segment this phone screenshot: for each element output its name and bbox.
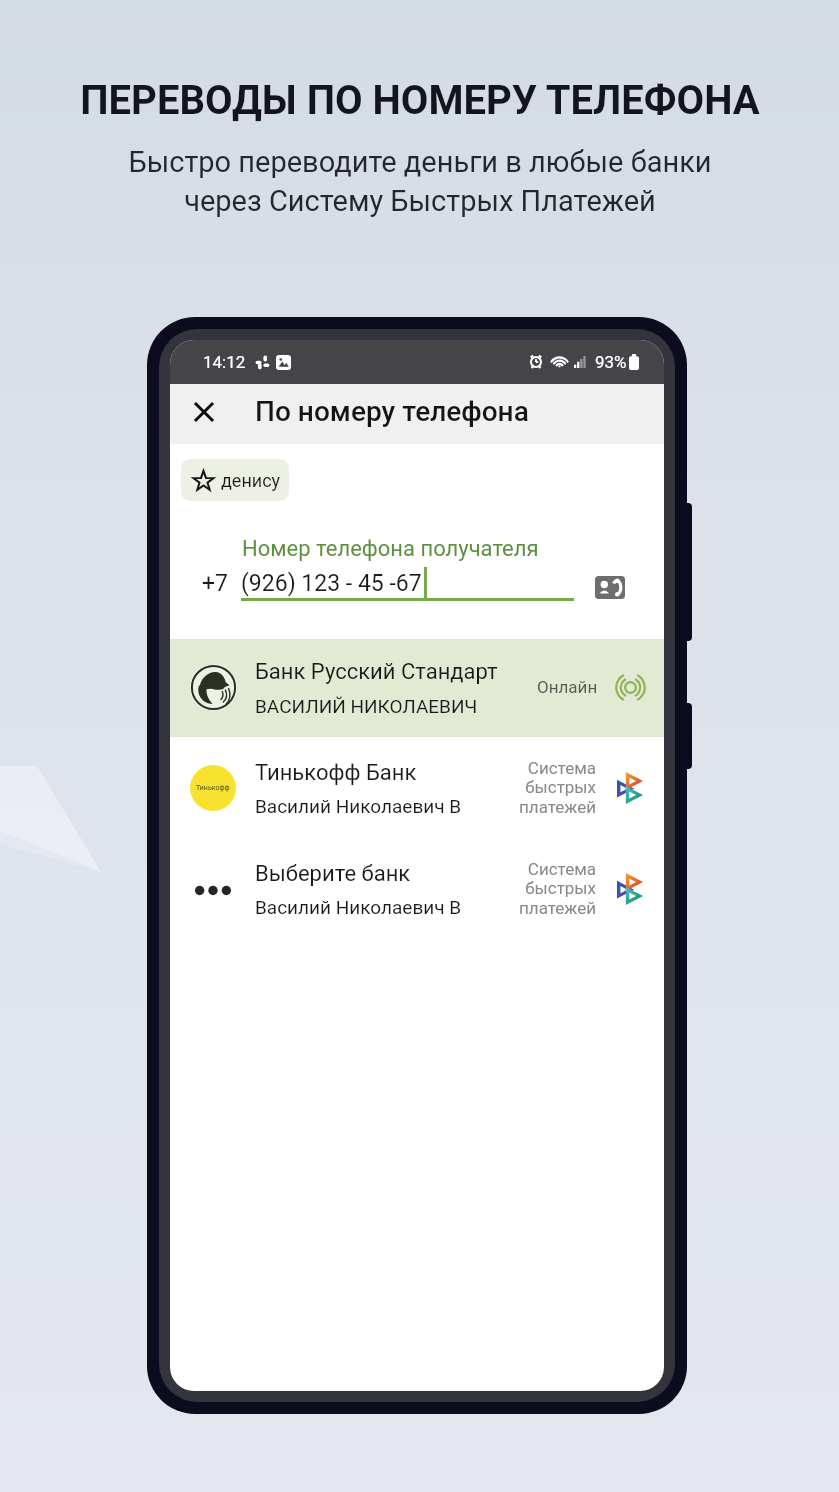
- staticText: (926) 123 - 45 -67: [241, 570, 422, 597]
- staticText: По номеру телефона: [255, 395, 529, 428]
- staticText: 93%: [595, 352, 627, 372]
- staticText: ВАСИЛИЙ НИКОЛАЕВИЧ: [255, 695, 478, 717]
- staticText: 14:12: [203, 352, 246, 372]
- staticText: Быстро переводите деньги в любые банки ч…: [128, 145, 712, 218]
- button[interactable]: Банк Русский Стандарт: [170, 639, 664, 737]
- staticText: Василий Николаевич В: [255, 795, 462, 817]
- staticText: Тинькофф Банк: [255, 760, 417, 786]
- staticText: Номер телефона получателя: [242, 536, 539, 562]
- staticText: ПЕРЕВОДЫ ПО НОМЕРУ ТЕЛЕФОНА: [80, 77, 760, 124]
- staticText: Тинькофф: [196, 784, 230, 792]
- staticText: Банк Русский Стандарт: [255, 659, 498, 685]
- staticText: Василий Николаевич В: [255, 896, 462, 918]
- button[interactable]: Выберите банк: [170, 838, 664, 939]
- button[interactable]: Выбрать из контактов: [590, 567, 630, 607]
- staticText: Выберите банк: [255, 861, 411, 887]
- button[interactable]: денису: [181, 459, 289, 501]
- staticText: Система быстрых платежей: [470, 758, 596, 818]
- button[interactable]: Закрыть: [182, 390, 226, 434]
- staticText: Система быстрых платежей: [470, 859, 596, 919]
- staticText: Онлайн: [537, 677, 598, 697]
- button[interactable]: Тинькофф: [170, 737, 664, 838]
- staticText: +7: [202, 570, 228, 597]
- staticText: денису: [221, 470, 281, 491]
